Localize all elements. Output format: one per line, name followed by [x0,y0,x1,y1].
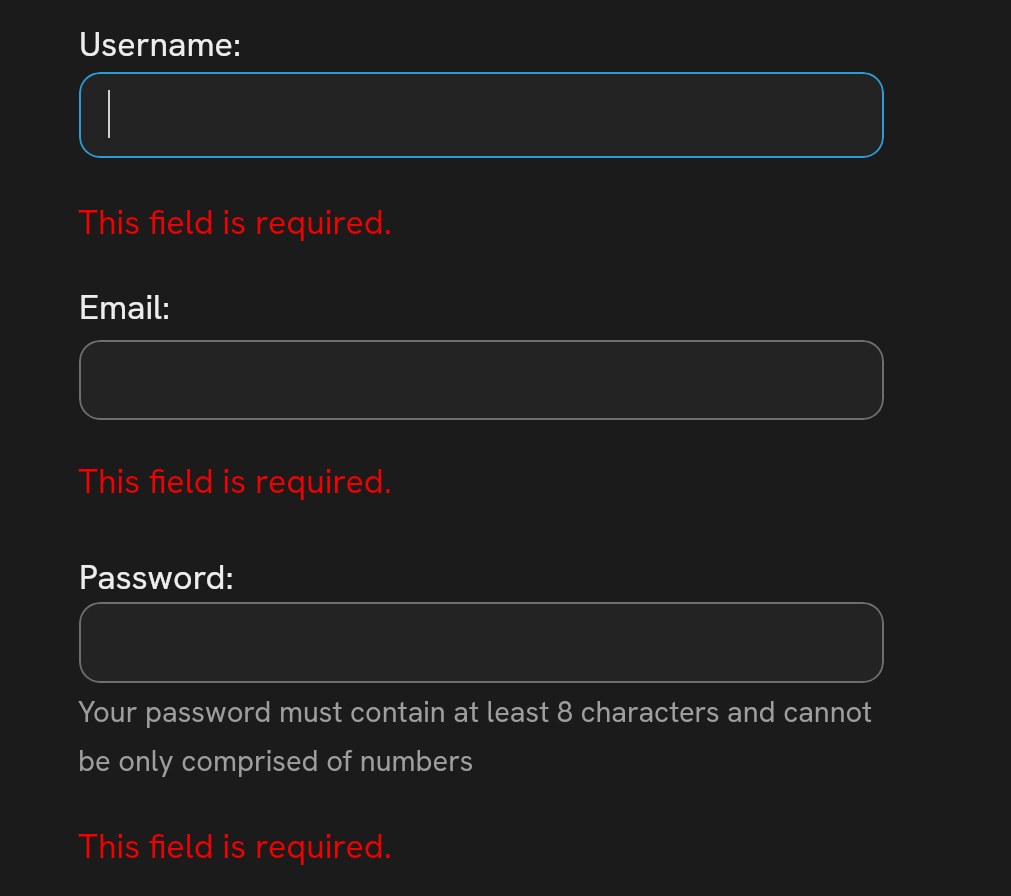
staticText: This field is required. [78,824,392,868]
button[interactable] [79,72,884,158]
staticText: This field is required. [78,459,392,503]
button[interactable] [79,602,884,683]
staticText: be only comprised of numbers [78,742,474,780]
staticText: This field is required. [78,200,392,244]
staticText: Username: [79,22,242,66]
staticText: Your password must contain at least 8 ch… [78,693,873,731]
button[interactable] [79,340,884,420]
staticText: Email: [79,285,171,329]
staticText: Password: [79,555,234,599]
